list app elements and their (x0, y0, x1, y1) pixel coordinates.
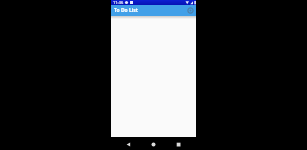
button[interactable] (187, 7, 194, 14)
button[interactable] (147, 137, 160, 150)
staticText: 11:36 (113, 0, 124, 5)
staticText: To Do List (114, 7, 139, 14)
button[interactable] (172, 137, 185, 150)
button[interactable] (122, 137, 135, 150)
